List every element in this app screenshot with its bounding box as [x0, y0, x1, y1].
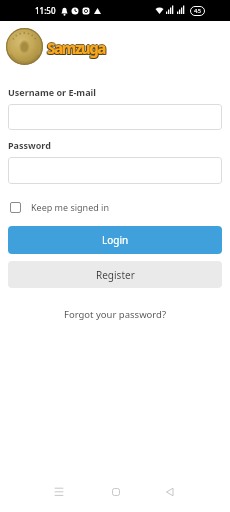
staticText: Samzuga: [47, 39, 105, 59]
staticText: Samzuga: [47, 38, 105, 58]
button[interactable]: [144, 480, 201, 504]
button[interactable]: [30, 480, 87, 504]
staticText: 11:50: [35, 5, 56, 16]
staticText: Password: [8, 139, 51, 151]
button[interactable]: [87, 480, 144, 504]
staticText: Username or E-mail: [8, 86, 96, 98]
staticText: Samzuga: [48, 39, 106, 59]
button[interactable]: Forgot your password?: [64, 308, 167, 321]
staticText: Register: [96, 268, 135, 282]
staticText: Samzuga: [46, 38, 104, 58]
staticText: Samzuga: [47, 37, 105, 57]
staticText: Keep me signed in: [31, 201, 109, 213]
button[interactable]: Register: [8, 261, 222, 288]
staticText: 45: [194, 7, 201, 15]
button[interactable]: [8, 104, 222, 130]
staticText: Samzuga: [46, 39, 104, 59]
button[interactable]: Keep me signed in: [10, 201, 109, 213]
button[interactable]: [8, 157, 222, 184]
staticText: Samzuga: [48, 38, 106, 58]
button[interactable]: Login: [8, 226, 222, 254]
staticText: Login: [102, 233, 129, 247]
